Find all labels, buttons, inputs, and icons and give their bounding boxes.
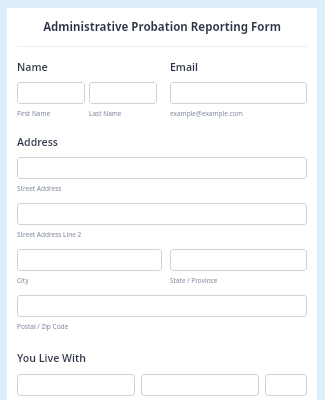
staticText: Street Address Line 2 xyxy=(17,230,82,239)
button[interactable]: First Name xyxy=(17,82,85,104)
staticText: Last Name xyxy=(89,109,122,118)
staticText: example@example.com xyxy=(170,109,243,118)
staticText: Name xyxy=(17,60,48,74)
button[interactable]: Postal / Zip Code xyxy=(17,295,307,317)
staticText: Address xyxy=(17,135,59,149)
button[interactable]: Relationship xyxy=(265,374,307,396)
button[interactable]: Last Name xyxy=(141,374,259,396)
button[interactable]: State / Province xyxy=(170,249,307,271)
button[interactable]: First Name xyxy=(17,374,135,396)
staticText: Administrative Probation Reporting Form xyxy=(43,19,281,35)
button[interactable]: City xyxy=(17,249,162,271)
staticText: You Live With xyxy=(17,351,86,365)
staticText: City xyxy=(17,276,29,285)
staticText: First Name xyxy=(17,109,51,118)
button[interactable]: Street Address xyxy=(17,157,307,179)
staticText: State / Province xyxy=(170,276,218,285)
staticText: Street Address xyxy=(17,184,62,193)
button[interactable]: Street Address Line 2 xyxy=(17,203,307,225)
button[interactable]: Last Name xyxy=(89,82,157,104)
button[interactable]: Email xyxy=(170,82,307,104)
staticText: Email xyxy=(170,60,199,74)
staticText: Postal / Zip Code xyxy=(17,322,69,331)
